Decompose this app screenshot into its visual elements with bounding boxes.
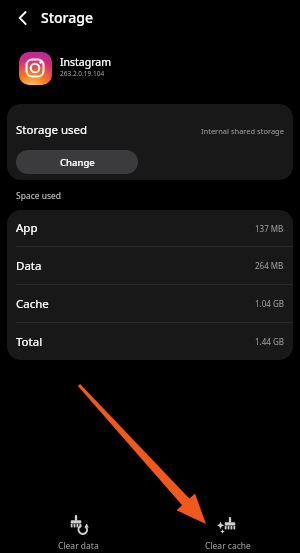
staticText: Data bbox=[16, 258, 42, 274]
staticText: Cache bbox=[16, 296, 49, 312]
button[interactable]: Cache bbox=[7, 285, 293, 322]
staticText: 1.44 GB bbox=[255, 336, 284, 347]
staticText: Storage used bbox=[16, 122, 88, 138]
button[interactable]: Clear cache bbox=[196, 514, 260, 552]
button[interactable]: Data bbox=[7, 247, 293, 284]
staticText: Instagram bbox=[60, 55, 112, 69]
button[interactable]: Change bbox=[16, 150, 138, 174]
button[interactable]: Clear data bbox=[46, 514, 110, 552]
staticText: App bbox=[16, 220, 38, 236]
button[interactable]: App bbox=[7, 210, 293, 246]
staticText: 264 MB bbox=[255, 260, 284, 271]
staticText: Internal shared storage bbox=[201, 126, 284, 136]
staticText: Clear data bbox=[58, 540, 99, 552]
staticText: 137 MB bbox=[255, 223, 284, 234]
staticText: 1.04 GB bbox=[255, 298, 284, 309]
staticText: Storage bbox=[41, 8, 93, 26]
staticText: Clear cache bbox=[205, 540, 251, 552]
button[interactable]: Total bbox=[7, 323, 293, 360]
staticText: Space used bbox=[16, 190, 62, 202]
staticText: Total bbox=[16, 334, 43, 350]
button[interactable] bbox=[9, 4, 37, 32]
staticText: 263.2.0.19.104 bbox=[60, 69, 105, 78]
staticText: Change bbox=[60, 156, 95, 169]
